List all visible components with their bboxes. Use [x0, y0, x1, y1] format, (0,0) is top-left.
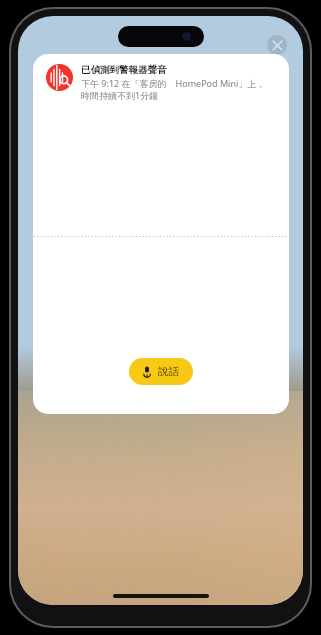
button[interactable]: Close	[267, 35, 287, 55]
staticText: 下午 9:12 在「客房的 HomePod Mini」上， 時間持續不到1分鐘	[81, 77, 266, 102]
button[interactable]: 說話	[129, 358, 193, 385]
staticText: 已偵測到警報器聲音	[81, 64, 167, 76]
staticText: 說話	[158, 365, 179, 378]
